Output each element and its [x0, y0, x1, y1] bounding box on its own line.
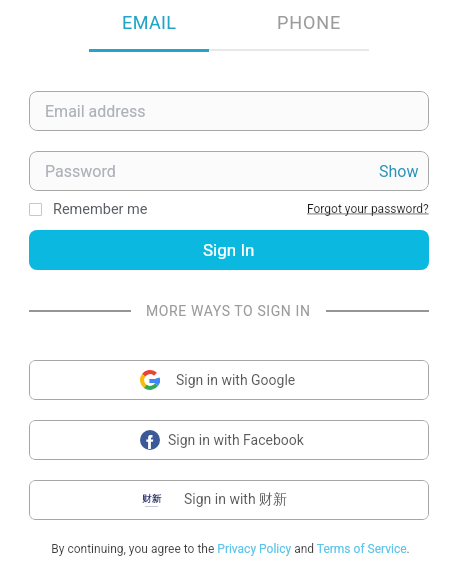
staticText: Sign In: [203, 240, 255, 260]
button[interactable]: Password: [29, 151, 429, 191]
button[interactable]: Remember me: [29, 201, 148, 218]
button[interactable]: Email address: [29, 91, 429, 131]
staticText: Sign in with Facebook: [168, 432, 304, 448]
staticText: PHONE: [277, 12, 342, 33]
other: Sign in with Facebook: [140, 430, 160, 450]
other: Sign in with Google: [140, 370, 160, 390]
staticText: Remember me: [53, 201, 148, 218]
button[interactable]: PHONE: [249, 0, 370, 44]
staticText: 财新: [142, 493, 161, 505]
staticText: Sign in with 财新: [184, 491, 288, 509]
button[interactable]: Sign in with Caixin: [29, 480, 429, 520]
staticText: MORE WAYS TO SIGN IN: [146, 303, 311, 319]
staticText: Forgot your password?: [307, 202, 429, 216]
other: Sign in with Caixin: [140, 489, 162, 511]
button[interactable]: Sign in with Google: [29, 360, 429, 400]
button[interactable]: EMAIL: [89, 0, 210, 44]
button[interactable]: Sign in with Facebook: [29, 420, 429, 460]
staticText: Email address: [45, 102, 146, 121]
button[interactable]: Sign In: [29, 230, 429, 270]
staticText: By continuing, you agree to the Privacy …: [51, 542, 410, 556]
button[interactable]: Show: [369, 151, 429, 191]
staticText: Sign in with Google: [176, 372, 296, 388]
staticText: Show: [379, 162, 419, 181]
button[interactable]: Forgot your password?: [307, 202, 429, 216]
staticText: EMAIL: [122, 12, 177, 33]
staticText: Password: [45, 162, 116, 181]
